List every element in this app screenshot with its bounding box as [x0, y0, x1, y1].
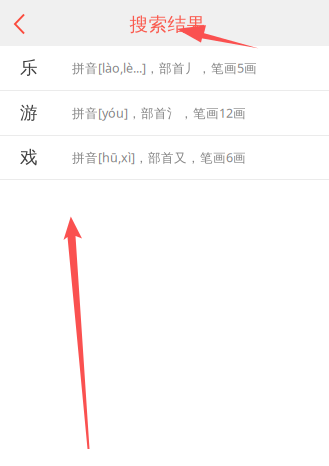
staticText: 乐 — [20, 57, 38, 79]
staticText: 游 — [20, 102, 38, 124]
staticText: 拼音[lào,lè...]，部首丿，笔画5画 — [72, 59, 257, 77]
button[interactable]: 游 — [0, 91, 329, 136]
button[interactable]: 戏 — [0, 136, 329, 180]
button[interactable]: 乐 — [0, 46, 329, 91]
staticText: 戏 — [20, 146, 38, 169]
staticText: 拼音[yóu]，部首氵，笔画12画 — [72, 104, 246, 122]
staticText: 搜索结果 — [129, 13, 205, 36]
staticText: 拼音[hū,xì]，部首又，笔画6画 — [72, 149, 246, 166]
button[interactable]: Back — [0, 0, 41, 46]
